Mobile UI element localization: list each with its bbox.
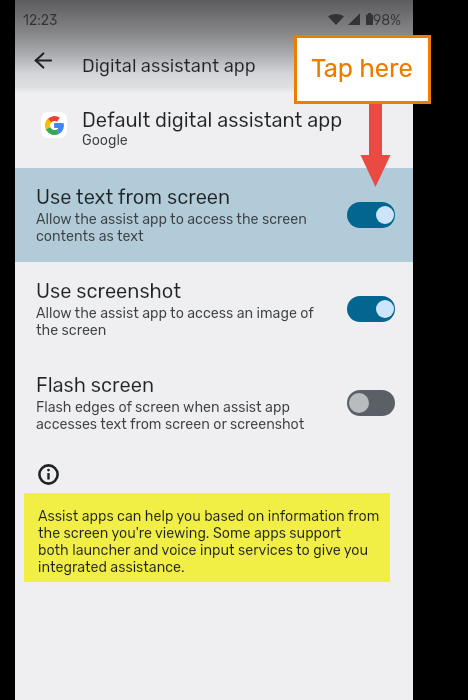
staticText: 12:23 — [23, 12, 58, 29]
staticText: Default digital assistant app — [82, 108, 343, 132]
button[interactable]: Use text from screen — [15, 168, 413, 262]
staticText: accesses text from screen or screenshot — [36, 416, 305, 433]
staticText: Tap here — [311, 53, 413, 83]
staticText: Google — [82, 132, 128, 149]
staticText: Allow the assist app to access the scree… — [36, 211, 307, 228]
button[interactable]: Switch on — [347, 296, 395, 322]
button[interactable]: Use screenshot — [15, 262, 413, 356]
staticText: integrated assistance. — [38, 559, 185, 576]
button[interactable]: Back — [21, 38, 65, 82]
staticText: Flash screen — [36, 373, 155, 397]
button[interactable]: Default digital assistant app — [15, 96, 413, 166]
staticText: Assist apps can help you based on inform… — [38, 508, 380, 525]
button[interactable]: Tap here — [294, 35, 431, 104]
button[interactable]: Flash screen — [15, 356, 413, 450]
staticText: Flash edges of screen when assist app — [36, 399, 290, 416]
staticText: 98% — [373, 12, 401, 29]
staticText: the screen you're viewing. Some apps sup… — [38, 525, 342, 542]
staticText: Use text from screen — [36, 185, 231, 209]
staticText: Use screenshot — [36, 279, 181, 303]
button[interactable]: Switch on — [347, 202, 395, 228]
staticText: Allow the assist app to access an image … — [36, 305, 314, 322]
button[interactable]: Switch off — [347, 390, 395, 416]
staticText: both launcher and voice input services t… — [38, 542, 369, 559]
staticText: Digital assistant app — [82, 55, 256, 77]
staticText: contents as text — [36, 228, 144, 245]
staticText: the screen — [36, 322, 107, 339]
